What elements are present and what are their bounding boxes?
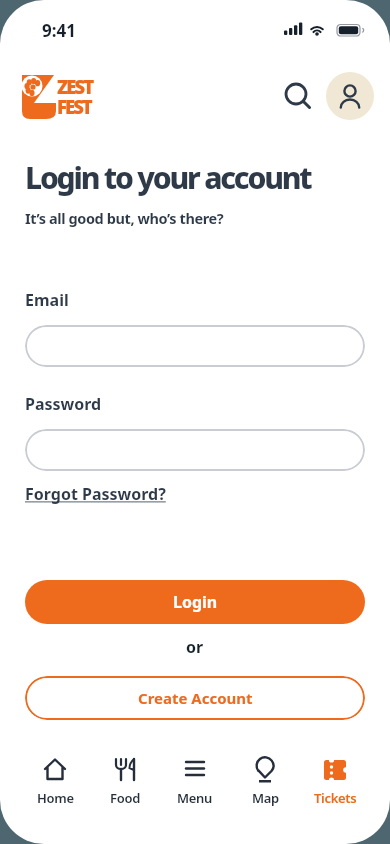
staticText: Login to your account [25, 157, 311, 198]
button[interactable] [25, 325, 365, 367]
button[interactable]: Food [90, 752, 160, 814]
staticText: Login [173, 591, 218, 613]
staticText: 9:41 [42, 19, 76, 42]
staticText: ZEST FEST [57, 74, 93, 119]
button[interactable]: Menu [160, 752, 230, 814]
staticText: or [186, 636, 204, 658]
button[interactable] [279, 77, 317, 115]
button[interactable] [25, 429, 365, 471]
staticText: Email [25, 289, 69, 311]
button[interactable] [326, 72, 374, 120]
staticText: Food [110, 789, 140, 807]
staticText: Tickets [314, 789, 357, 807]
button[interactable]: Forgot Password? [25, 483, 166, 505]
staticText: Menu [177, 789, 213, 807]
button[interactable]: Create Account [25, 676, 365, 720]
button[interactable]: Map [230, 752, 300, 814]
button[interactable]: Login [25, 580, 365, 624]
staticText: It’s all good but, who’s there? [25, 208, 224, 228]
button[interactable]: Home [20, 752, 90, 814]
staticText: Home [37, 789, 74, 807]
button[interactable]: Tickets [300, 752, 370, 814]
staticText: Create Account [138, 688, 253, 708]
staticText: Password [25, 393, 102, 415]
staticText: Map [252, 789, 279, 807]
